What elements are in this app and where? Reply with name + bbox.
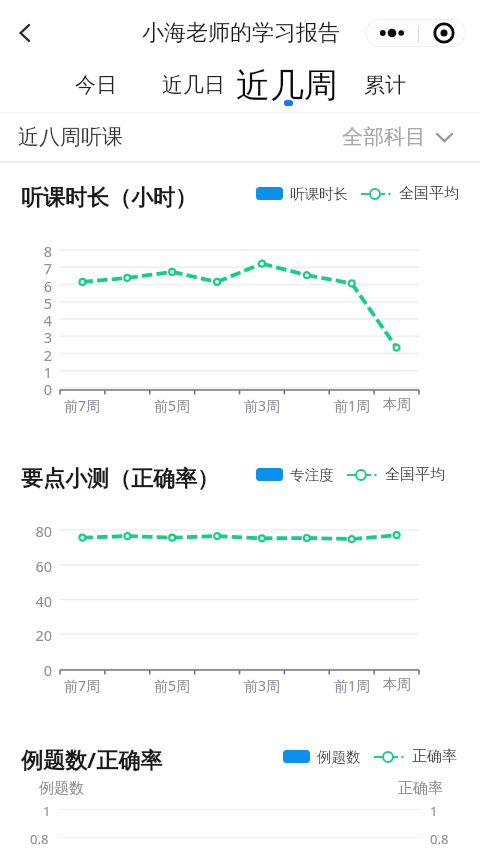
button[interactable]: 今日: [64, 65, 128, 105]
staticText: 3: [43, 327, 52, 345]
staticText: 0.8: [30, 830, 49, 848]
staticText: 7: [43, 258, 52, 276]
staticText: 全国平均: [399, 184, 459, 203]
staticText: 0: [43, 660, 52, 678]
button[interactable]: 小程序菜单: [421, 19, 466, 47]
staticText: 0: [43, 379, 52, 397]
staticText: 近几周: [236, 64, 338, 107]
staticText: 全部科目: [342, 124, 426, 150]
staticText: 0.8: [430, 830, 449, 848]
button[interactable]: 近几日: [161, 65, 225, 105]
staticText: 专注度: [290, 466, 334, 484]
staticText: 本周: [383, 676, 411, 694]
staticText: 80: [35, 521, 52, 539]
staticText: 40: [35, 591, 52, 609]
staticText: 5: [43, 293, 52, 311]
staticText: 8: [43, 241, 52, 259]
staticText: 2: [43, 345, 52, 363]
button[interactable]: 返回: [8, 16, 42, 50]
button[interactable]: 近几周: [231, 62, 343, 108]
staticText: 4: [43, 310, 52, 328]
staticText: 累计: [364, 72, 406, 98]
staticText: 例题数/正确率: [21, 744, 163, 774]
staticText: 正确率: [412, 747, 457, 766]
staticText: 听课时长: [290, 185, 348, 203]
staticText: 6: [43, 276, 52, 294]
staticText: 本周: [383, 396, 411, 414]
staticText: 前5周: [154, 676, 191, 695]
staticText: 1: [430, 802, 438, 820]
staticText: 今日: [75, 72, 117, 98]
staticText: 近几日: [162, 72, 225, 98]
staticText: 60: [35, 556, 52, 574]
staticText: 例题数: [317, 748, 361, 766]
staticText: 近八周听课: [18, 124, 123, 150]
staticText: 正确率: [398, 779, 443, 798]
staticText: 要点小测（正确率）: [21, 465, 219, 493]
staticText: 前3周: [244, 396, 281, 415]
staticText: 小海老师的学习报告: [142, 19, 340, 47]
staticText: 前5周: [154, 396, 191, 415]
staticText: 前7周: [64, 396, 101, 415]
staticText: 前3周: [244, 676, 281, 695]
staticText: 1: [43, 362, 52, 380]
staticText: 听课时长（小时）: [21, 184, 197, 212]
staticText: 前1周: [334, 396, 371, 415]
button[interactable]: 累计: [353, 65, 417, 105]
staticText: 1: [43, 802, 51, 820]
staticText: 20: [35, 625, 52, 643]
staticText: 前1周: [334, 676, 371, 695]
button[interactable]: 全部科目: [342, 124, 454, 150]
staticText: 前7周: [64, 676, 101, 695]
button[interactable]: 更多: [367, 19, 417, 47]
staticText: 例题数: [39, 779, 84, 798]
staticText: 全国平均: [385, 465, 445, 484]
